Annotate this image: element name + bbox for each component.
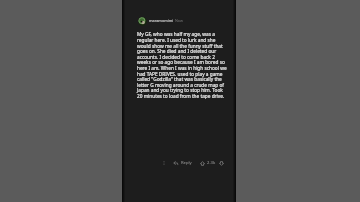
staticText: goes on. She died and I deleted our <box>137 48 217 54</box>
staticText: 20 minutes to load from the tape drive. <box>137 93 225 99</box>
staticText: maramomimi <box>149 18 174 23</box>
staticText: 2.3k <box>207 160 216 166</box>
staticText: would show me all the funny stuff that <box>137 43 223 49</box>
button[interactable]: Downvote <box>217 159 225 167</box>
button[interactable]: Profile picture <box>138 17 147 26</box>
button[interactable]: Upvote <box>198 159 206 167</box>
button[interactable]: Reply <box>173 160 192 166</box>
staticText: Reply <box>181 160 192 166</box>
staticText: had TAPE DRIVES. used to play a game <box>137 71 223 77</box>
staticText: Japan and you trying to stop him. Took <box>137 87 223 93</box>
button[interactable]: More options <box>159 158 168 167</box>
staticText: letter G moving around a crude map of <box>137 82 224 88</box>
staticText: regular here. I used to lurk and she <box>137 37 216 43</box>
staticText: accounts. I decided to come back 2 <box>137 54 215 60</box>
staticText: My GF, who was half my age, was a <box>137 31 215 37</box>
staticText: called "Godzilla" that was basically the <box>137 76 222 82</box>
staticText: here I am. When I was in high school we <box>137 65 227 71</box>
staticText: weeks or so ago because I am bored so <box>137 59 225 65</box>
staticText: Now <box>175 18 183 23</box>
